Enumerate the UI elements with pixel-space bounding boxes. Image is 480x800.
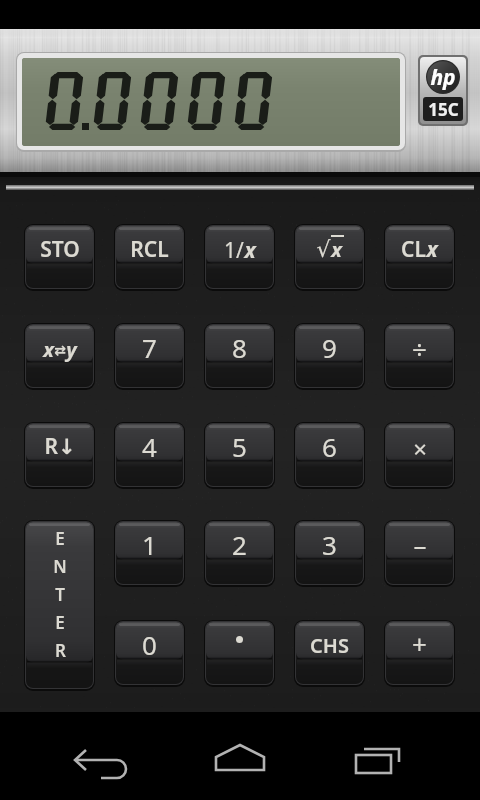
- staticText: 1/: [224, 236, 244, 265]
- staticText: +: [412, 626, 427, 661]
- button[interactable]: multiply: [386, 424, 453, 486]
- staticText: E: [55, 527, 65, 550]
- staticText: ×: [413, 432, 427, 465]
- button[interactable]: one over x: [206, 226, 273, 288]
- button[interactable]: 9: [296, 325, 363, 387]
- staticText: x: [331, 236, 342, 263]
- button[interactable]: square root of x: [296, 226, 363, 288]
- staticText: N: [53, 555, 67, 578]
- staticText: x: [43, 336, 54, 363]
- staticText: ⇄: [54, 342, 66, 358]
- button[interactable]: 8: [206, 325, 273, 387]
- staticText: 2: [232, 527, 247, 562]
- staticText: x: [244, 236, 256, 265]
- staticText: 8: [232, 330, 247, 365]
- button[interactable]: 4: [116, 424, 183, 486]
- button[interactable]: ENTER: [26, 522, 93, 688]
- staticText: 0: [142, 627, 157, 662]
- staticText: CHS: [310, 632, 349, 659]
- staticText: hp: [430, 63, 456, 92]
- staticText: T: [55, 583, 65, 606]
- button[interactable]: STO: [26, 226, 93, 288]
- staticText: y: [66, 336, 77, 363]
- staticText: R↓: [44, 432, 76, 461]
- button[interactable]: add: [386, 622, 453, 684]
- staticText: R: [55, 639, 66, 662]
- button[interactable]: divide: [386, 325, 453, 387]
- button[interactable]: decimal point: [206, 622, 273, 684]
- button[interactable]: 0: [116, 622, 183, 684]
- button[interactable]: roll down: [26, 424, 93, 486]
- button[interactable]: Recent apps: [320, 712, 480, 800]
- button[interactable]: 3: [296, 522, 363, 584]
- button[interactable]: Back: [0, 712, 160, 800]
- button[interactable]: 1: [116, 522, 183, 584]
- staticText: STO: [40, 235, 80, 264]
- staticText: √: [316, 237, 331, 263]
- staticText: 6: [322, 429, 337, 464]
- staticText: x: [426, 235, 438, 264]
- button[interactable]: change sign: [296, 622, 363, 684]
- staticText: 5: [232, 429, 247, 464]
- staticText: 7: [142, 330, 157, 365]
- staticText: ÷: [412, 331, 427, 366]
- button[interactable]: clear x: [386, 226, 453, 288]
- staticText: 3: [322, 527, 337, 562]
- button[interactable]: RCL: [116, 226, 183, 288]
- button[interactable]: swap x and y: [26, 325, 93, 387]
- staticText: 4: [142, 429, 157, 464]
- staticText: 9: [322, 330, 337, 365]
- staticText: 1: [142, 527, 157, 562]
- button[interactable]: 5: [206, 424, 273, 486]
- staticText: RCL: [130, 235, 169, 264]
- button[interactable]: 7: [116, 325, 183, 387]
- staticText: CL: [401, 235, 426, 264]
- button[interactable]: Home: [160, 712, 320, 800]
- button[interactable]: 2: [206, 522, 273, 584]
- button[interactable]: 6: [296, 424, 363, 486]
- button[interactable]: subtract: [386, 522, 453, 584]
- staticText: E: [55, 611, 65, 634]
- staticText: –: [413, 527, 427, 562]
- staticText: 15C: [428, 98, 459, 121]
